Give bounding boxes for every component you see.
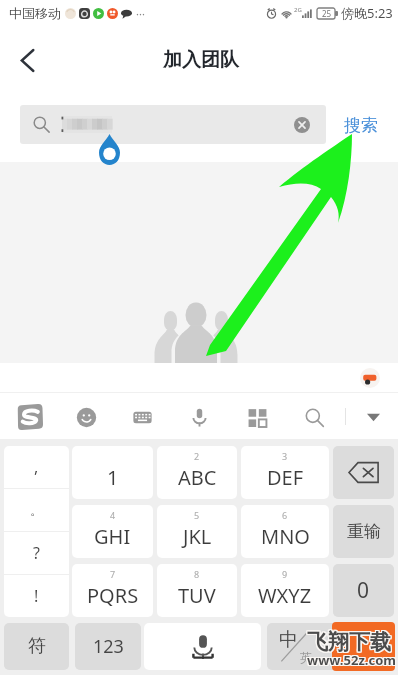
staticText: 飞翔下载 [308, 629, 392, 655]
button[interactable]: Search [295, 398, 333, 436]
button[interactable]: Emoji [67, 398, 105, 436]
staticText: 加入团队 [163, 48, 239, 72]
button[interactable]: 。 [4, 489, 69, 531]
staticText: PQRS [87, 582, 139, 609]
staticText: 7 [110, 568, 116, 580]
staticText: www.52z.com [307, 650, 396, 668]
button[interactable]: Space [144, 623, 261, 670]
button[interactable]: 重输 [333, 505, 394, 558]
button[interactable]: 123 [75, 623, 141, 670]
button[interactable]: Voice input [180, 398, 218, 436]
staticText: 飞翔下载 [307, 628, 391, 654]
staticText: 8 [194, 568, 200, 580]
staticText: JKL [183, 523, 212, 550]
staticText: www.52z.com [308, 650, 397, 668]
staticText: 搜索 [344, 115, 378, 136]
staticText: www.52z.com [307, 651, 396, 669]
staticText: 6 [282, 509, 288, 521]
staticText: 中 [279, 628, 298, 652]
staticText: 0 [357, 576, 370, 605]
button[interactable]: 5 [157, 505, 237, 558]
button[interactable]: 1 [72, 446, 153, 499]
staticText: ! [34, 585, 39, 607]
staticText: 飞翔下载 [307, 629, 391, 655]
staticText: 123 [93, 634, 124, 659]
button[interactable]: More apps [238, 398, 276, 436]
staticText: 飞翔下载 [306, 629, 390, 655]
staticText: 25 [322, 8, 332, 19]
staticText: 飞翔下载 [306, 628, 390, 654]
button[interactable]: Sogou input [11, 398, 49, 436]
staticText: 飞翔下载 [308, 628, 392, 654]
staticText: , [34, 456, 39, 478]
button[interactable]: Backspace [333, 446, 394, 499]
button[interactable]: Keyboard layout [123, 398, 161, 436]
button[interactable]: 搜索 [336, 110, 386, 141]
staticText: 中国移动 [9, 5, 61, 21]
button[interactable]: Clear text [287, 110, 317, 140]
staticText: www.52z.com [306, 651, 395, 669]
staticText: 重输 [347, 521, 381, 542]
staticText: 2G [294, 6, 302, 14]
staticText: 符 [28, 635, 46, 658]
staticText: 1 [107, 464, 119, 491]
button[interactable]: 6 [241, 505, 329, 558]
staticText: TUV [178, 582, 216, 609]
button[interactable]: 8 [157, 564, 237, 617]
staticText: 飞翔下载 [308, 630, 392, 656]
staticText: ··· [136, 6, 145, 21]
button[interactable]: 符 [4, 623, 69, 670]
staticText: 飞翔下载 [307, 630, 391, 656]
staticText: GHI [94, 523, 131, 550]
button[interactable]: 0 [333, 564, 394, 617]
staticText: www.52z.com [306, 650, 395, 668]
button[interactable]: Hide keyboard [354, 398, 392, 436]
button[interactable]: ! [4, 575, 69, 617]
button[interactable]: 9 [241, 564, 329, 617]
staticText: ABC [178, 464, 217, 491]
staticText: 傍晚5:23 [341, 4, 393, 22]
button[interactable]: 2 [157, 446, 237, 499]
button[interactable]: Back [7, 40, 47, 80]
button[interactable]: , [4, 446, 69, 488]
button[interactable]: 4 [72, 505, 153, 558]
staticText: WXYZ [258, 582, 312, 609]
button[interactable]: ? [4, 532, 69, 574]
staticText: DEF [267, 464, 304, 491]
staticText: 4 [110, 509, 116, 521]
staticText: 。 [30, 502, 43, 518]
button[interactable]: Switch Chinese English [267, 623, 394, 670]
staticText: 3 [282, 450, 288, 462]
staticText: www.52z.com [306, 652, 395, 670]
staticText: ? [33, 542, 40, 564]
staticText: MNO [261, 523, 310, 550]
staticText: 5 [194, 509, 200, 521]
staticText: www.52z.com [308, 652, 397, 670]
staticText: 英 [300, 650, 312, 665]
staticText: 9 [282, 568, 288, 580]
button[interactable]: 3 [241, 446, 329, 499]
staticText: 2 [194, 450, 200, 462]
staticText: 飞翔下载 [306, 630, 390, 656]
button[interactable]: Clear text [20, 105, 326, 144]
button[interactable]: 7 [72, 564, 153, 617]
staticText: www.52z.com [308, 651, 397, 669]
staticText: www.52z.com [307, 652, 396, 670]
